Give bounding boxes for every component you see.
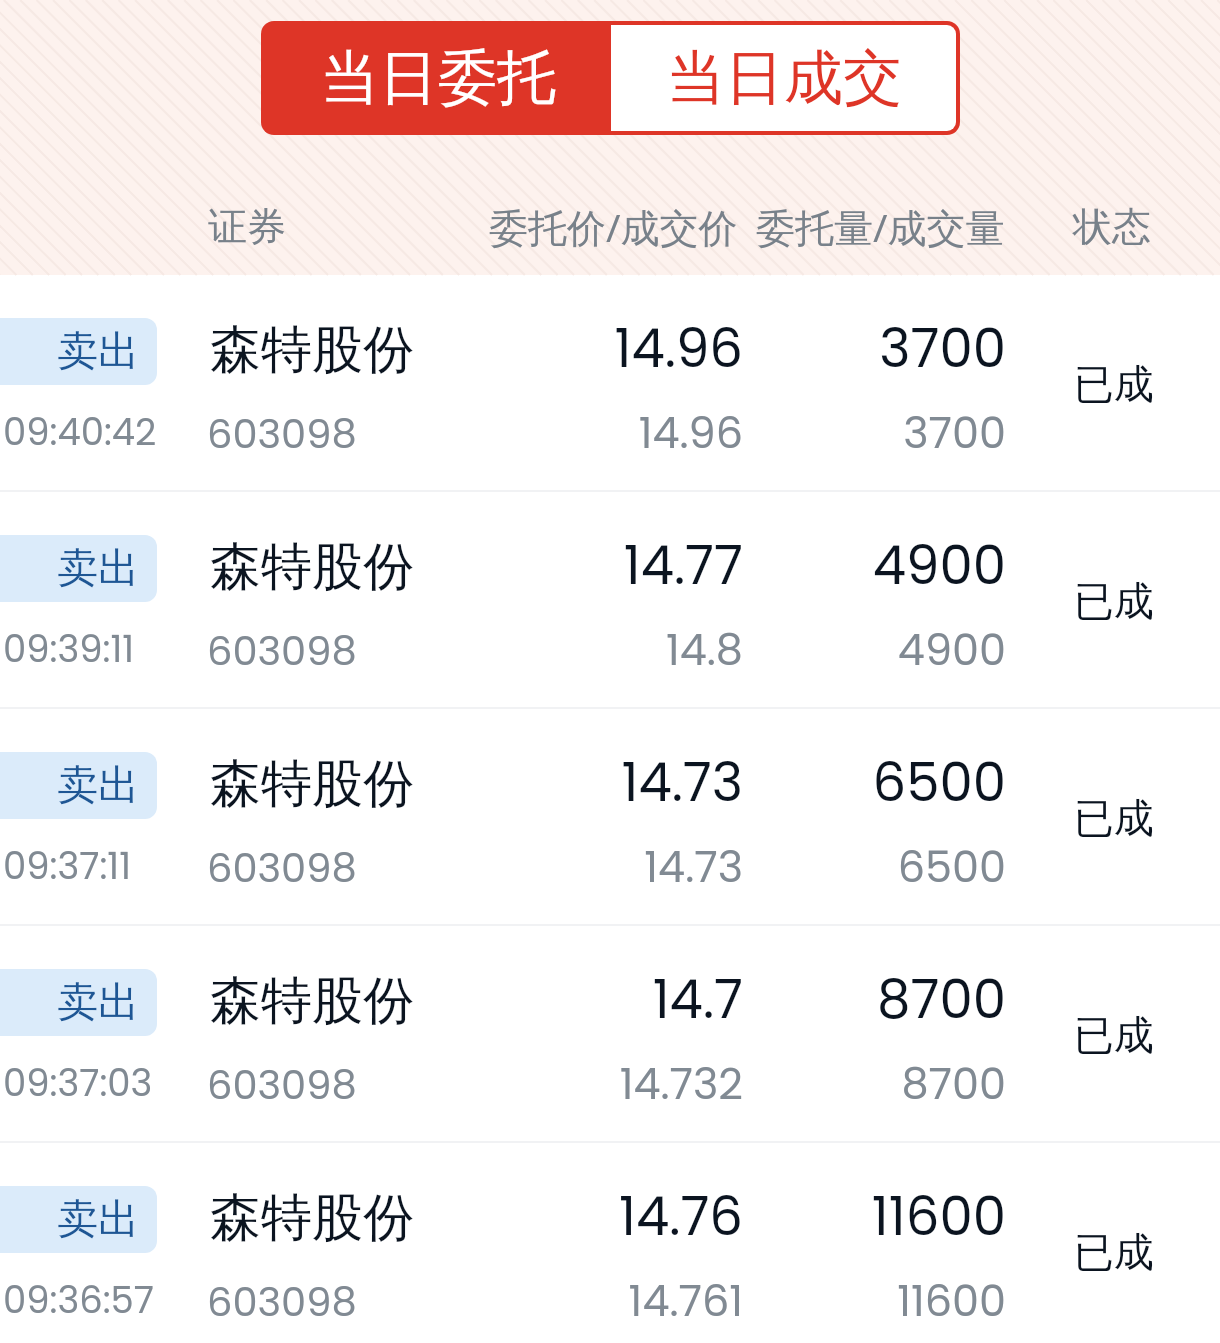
- staticText: 已成: [1074, 359, 1154, 409]
- staticText: 卖出: [57, 760, 139, 812]
- staticText: 卖出: [57, 977, 139, 1029]
- staticText: 状态: [1073, 202, 1151, 251]
- staticText: 4900: [666, 528, 1006, 602]
- staticText: 3700: [666, 311, 1006, 385]
- staticText: 14.96: [403, 403, 743, 463]
- staticText: 6500: [666, 745, 1006, 819]
- staticText: 委托价/成交价: [489, 200, 738, 253]
- staticText: 14.732: [403, 1054, 743, 1114]
- staticText: 已成: [1074, 1010, 1154, 1060]
- staticText: 14.77: [403, 528, 743, 602]
- staticText: 603098: [207, 1057, 357, 1113]
- staticText: 8700: [666, 1054, 1006, 1114]
- staticText: 14.7: [403, 962, 743, 1036]
- button[interactable]: 卖出: [0, 492, 1220, 707]
- staticText: 14.73: [403, 837, 743, 897]
- button[interactable]: 卖出: [0, 1143, 1220, 1343]
- staticText: 6500: [666, 837, 1006, 897]
- staticText: 603098: [207, 406, 357, 462]
- staticText: 森特股份: [210, 969, 414, 1033]
- staticText: 14.8: [403, 620, 743, 680]
- button[interactable]: 卖出: [0, 709, 1220, 924]
- staticText: 卖出: [57, 326, 139, 378]
- staticText: 14.73: [403, 745, 743, 819]
- staticText: 已成: [1074, 1227, 1154, 1277]
- staticText: 当日委托: [320, 41, 556, 115]
- staticText: 603098: [207, 840, 357, 896]
- staticText: 已成: [1074, 793, 1154, 843]
- staticText: 09:39:11: [3, 623, 135, 675]
- staticText: 证券: [208, 202, 286, 251]
- staticText: 卖出: [57, 1194, 139, 1246]
- staticText: 14.761: [403, 1271, 743, 1331]
- staticText: 14.76: [403, 1179, 743, 1253]
- staticText: 09:40:42: [3, 406, 157, 458]
- staticText: 森特股份: [210, 752, 414, 816]
- staticText: 卖出: [57, 543, 139, 595]
- button[interactable]: 当日委托: [265, 25, 611, 131]
- staticText: 已成: [1074, 576, 1154, 626]
- staticText: 11600: [666, 1271, 1006, 1331]
- staticText: 603098: [207, 623, 357, 679]
- staticText: 09:37:03: [3, 1057, 153, 1109]
- button[interactable]: 当日成交: [611, 25, 956, 131]
- staticText: 09:36:57: [3, 1274, 155, 1326]
- button[interactable]: 卖出: [0, 275, 1220, 490]
- staticText: 8700: [666, 962, 1006, 1036]
- staticText: 森特股份: [210, 1186, 414, 1250]
- staticText: 603098: [207, 1274, 357, 1330]
- button[interactable]: 卖出: [0, 926, 1220, 1141]
- staticText: 14.96: [403, 311, 743, 385]
- staticText: 森特股份: [210, 535, 414, 599]
- staticText: 森特股份: [210, 318, 414, 382]
- staticText: 3700: [666, 403, 1006, 463]
- staticText: 当日成交: [666, 41, 902, 115]
- staticText: 4900: [666, 620, 1006, 680]
- staticText: 委托量/成交量: [756, 200, 1005, 253]
- staticText: 11600: [666, 1179, 1006, 1253]
- staticText: 09:37:11: [3, 840, 131, 892]
